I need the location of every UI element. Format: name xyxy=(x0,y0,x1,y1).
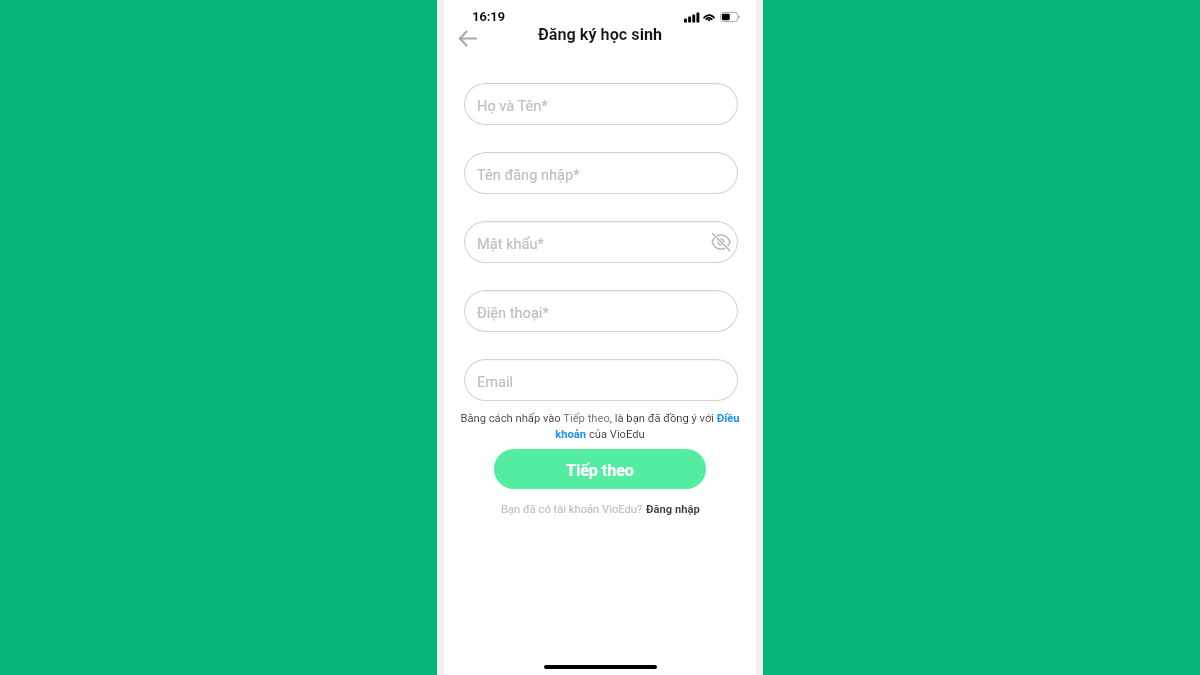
button[interactable]: Email xyxy=(464,359,738,401)
button[interactable]: Điện thoại* xyxy=(464,290,738,332)
button[interactable]: Họ và Tên* xyxy=(464,83,738,125)
staticText: Đăng ký học sinh xyxy=(538,25,663,44)
staticText: Điện thoại* xyxy=(477,304,549,321)
staticText: Bạn đã có tài khoản VioEdu? xyxy=(501,503,646,516)
button[interactable]: Tên đăng nhập* xyxy=(464,152,738,194)
staticText: Bằng cách nhấp vào Tiếp theo, là bạn đã … xyxy=(455,412,745,441)
button[interactable]: Bạn đã có tài khoản VioEdu? xyxy=(501,503,700,516)
staticText: 16:19 xyxy=(472,9,505,25)
staticText: Đăng nhập xyxy=(646,503,700,516)
button[interactable]: Mật khẩu* xyxy=(464,221,738,263)
button[interactable]: Back xyxy=(454,24,482,52)
staticText: Họ và Tên* xyxy=(477,97,548,114)
button[interactable]: Show password xyxy=(709,230,733,254)
staticText: Email xyxy=(477,373,514,390)
button[interactable]: Bằng cách nhấp vào Tiếp theo, là bạn đã … xyxy=(455,412,745,441)
staticText: Mật khẩu* xyxy=(477,235,544,252)
staticText: Tên đăng nhập* xyxy=(477,166,580,183)
button[interactable]: Tiếp theo xyxy=(494,449,706,489)
staticText: Tiếp theo xyxy=(566,461,634,480)
